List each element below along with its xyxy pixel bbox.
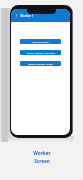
button[interactable]: Report Unsafe Hours: [20, 61, 61, 66]
button[interactable]: Check Earned Summary: [20, 50, 61, 55]
button[interactable]: Back: [14, 13, 19, 18]
staticText: Check Earned Summary: [27, 51, 55, 54]
staticText: Report Unsafe Hours: [28, 62, 53, 65]
staticText: Submit Hours: [32, 40, 49, 43]
staticText: Screen: [34, 158, 50, 164]
staticText: Worker 1: [20, 14, 34, 18]
button[interactable]: Submit Hours: [20, 39, 61, 44]
staticText: Worker: [33, 150, 51, 156]
